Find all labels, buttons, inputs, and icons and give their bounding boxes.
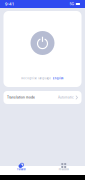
staticText: Recognise language <box>21 77 51 80</box>
staticText: 9:41 <box>5 2 14 6</box>
button[interactable]: Start listening <box>30 31 54 55</box>
button[interactable]: Phrasebook <box>42 166 85 175</box>
staticText: Translation mode <box>7 96 35 99</box>
button[interactable]: Translation <box>0 166 42 175</box>
staticText: Phrasebook <box>59 168 69 171</box>
button[interactable]: Translation mode <box>3 91 81 104</box>
staticText: Translation <box>17 168 26 171</box>
staticText: 5G <box>69 2 74 6</box>
button[interactable]: English <box>53 77 64 80</box>
staticText: English <box>53 77 64 80</box>
staticText: Automatic <box>58 96 74 99</box>
